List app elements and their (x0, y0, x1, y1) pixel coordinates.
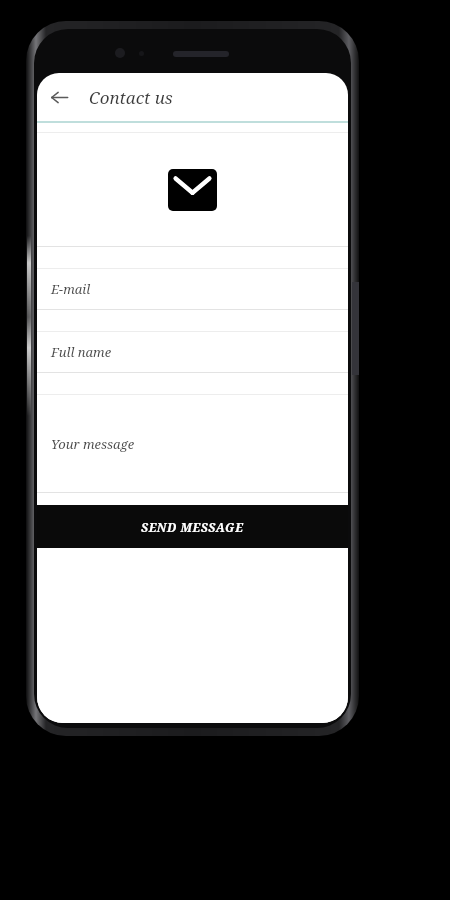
staticText: Your message (51, 435, 135, 453)
staticText: Contact us (89, 86, 173, 109)
staticText: E-mail (51, 280, 91, 298)
staticText: SEND MESSAGE (141, 519, 244, 535)
button[interactable]: Back (37, 75, 81, 119)
staticText: Full name (51, 343, 112, 361)
button[interactable]: Your message (37, 395, 348, 492)
button[interactable]: SEND MESSAGE (37, 505, 348, 548)
button[interactable]: Full name (37, 332, 348, 372)
button[interactable]: E-mail (37, 269, 348, 309)
